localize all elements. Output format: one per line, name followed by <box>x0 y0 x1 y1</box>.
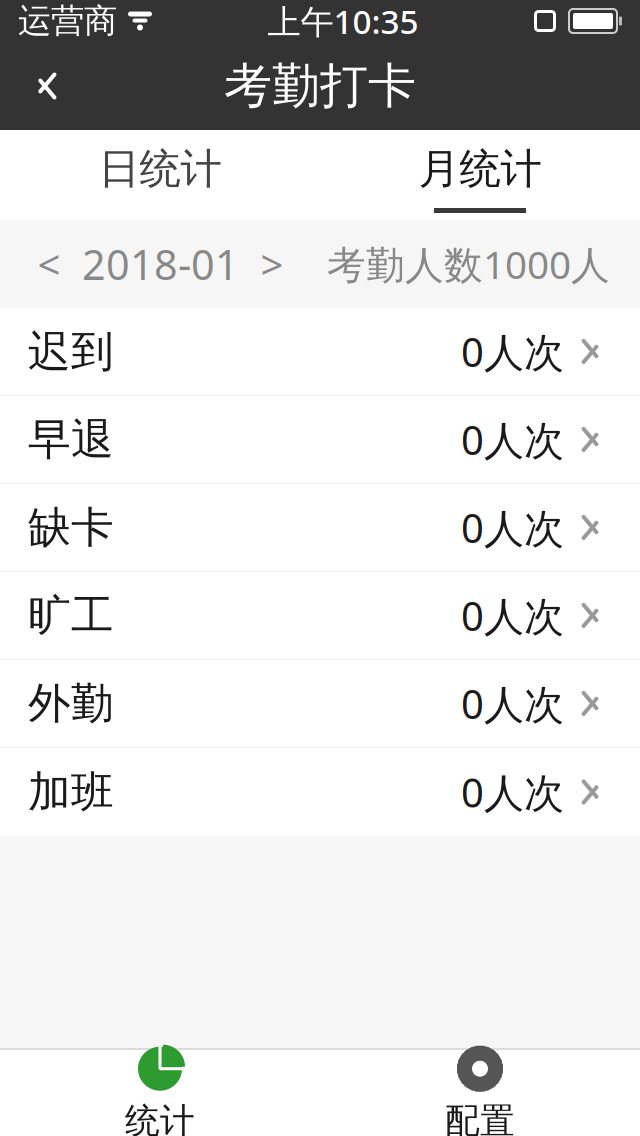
button[interactable]: 迟到 <box>0 308 640 396</box>
button[interactable]: 配置 <box>320 1050 640 1136</box>
staticText: 考勤人数1000人 <box>327 238 610 290</box>
staticText: 上午10:35 <box>267 0 418 43</box>
staticText: 外勤 <box>28 677 114 730</box>
staticText: 0人次 <box>461 413 564 466</box>
button[interactable]: 加班 <box>0 748 640 836</box>
button[interactable]: 旷工 <box>0 572 640 660</box>
staticText: 0人次 <box>461 589 564 642</box>
button[interactable]: 下一月 <box>245 233 299 295</box>
staticText: 0人次 <box>461 325 564 378</box>
button[interactable]: 上一月 <box>22 233 76 295</box>
staticText: 配置 <box>445 1100 515 1136</box>
staticText: 迟到 <box>28 325 114 378</box>
button[interactable]: 缺卡 <box>0 484 640 572</box>
button[interactable]: 月统计 <box>320 130 640 220</box>
staticText: 早退 <box>28 413 114 466</box>
staticText: < <box>37 237 60 290</box>
button[interactable]: 日统计 <box>0 130 320 220</box>
staticText: 0人次 <box>461 765 564 818</box>
staticText: 0人次 <box>461 501 564 554</box>
button[interactable]: 返回 <box>0 42 74 130</box>
staticText: 考勤打卡 <box>224 56 416 115</box>
button[interactable]: 外勤 <box>0 660 640 748</box>
staticText: 月统计 <box>418 144 541 194</box>
staticText: 运营商 <box>18 0 117 41</box>
staticText: 日统计 <box>98 144 221 194</box>
staticText: > <box>260 237 283 290</box>
staticText: 统计 <box>125 1100 195 1136</box>
staticText: 0人次 <box>461 677 564 730</box>
staticText: 2018-01 <box>82 237 239 291</box>
button[interactable]: 早退 <box>0 396 640 484</box>
button[interactable]: 统计 <box>0 1050 320 1136</box>
staticText: 加班 <box>28 766 114 818</box>
staticText: 缺卡 <box>28 501 114 554</box>
staticText: 旷工 <box>28 589 114 642</box>
